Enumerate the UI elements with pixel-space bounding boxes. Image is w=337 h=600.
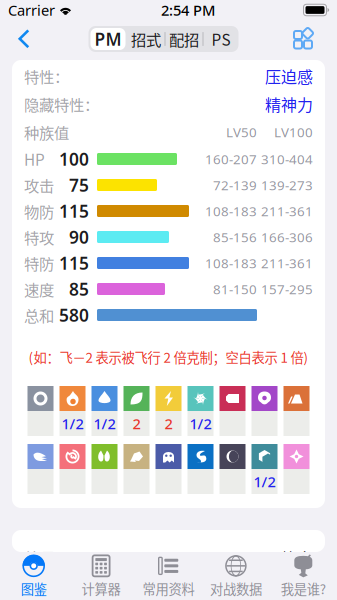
staticText: 2:54 PM (161, 0, 215, 20)
staticText: 2 (132, 414, 140, 433)
button[interactable]: 图鉴 (0, 551, 67, 600)
staticText: 计算器 (82, 579, 121, 598)
button[interactable]: Back (4, 20, 44, 58)
staticText: 100 (59, 147, 89, 170)
staticText: 1/2 (93, 414, 115, 433)
staticText: Carrier (8, 0, 55, 20)
button[interactable] (27, 386, 53, 436)
button[interactable] (59, 444, 85, 494)
staticText: 108-183 (205, 202, 257, 220)
button[interactable]: PS (203, 26, 238, 52)
staticText: 1/2 (61, 414, 83, 433)
staticText: 招式 (131, 28, 161, 50)
staticText: 我是谁? (281, 579, 326, 598)
button[interactable] (219, 444, 245, 494)
button[interactable]: PM (88, 26, 127, 52)
button[interactable] (283, 386, 309, 436)
staticText: 2 (164, 414, 172, 433)
button[interactable]: 1/2 (187, 386, 213, 436)
staticText: 特攻 (24, 226, 54, 248)
button[interactable] (123, 444, 149, 494)
staticText: (如：飞－2 表示被飞行 2 倍克制；空白表示 1 倍) (28, 347, 308, 367)
button[interactable]: 常用资料 (135, 551, 202, 600)
button[interactable] (251, 386, 277, 436)
staticText: 157-295 (261, 280, 313, 298)
staticText: 物防 (24, 200, 54, 222)
staticText: 211-361 (261, 254, 313, 272)
staticText: 对战数据 (210, 579, 262, 598)
staticText: 1/2 (253, 472, 275, 491)
staticText: 166-306 (261, 228, 313, 246)
staticText: 特防 (24, 252, 54, 274)
staticText: 速度 (24, 278, 54, 300)
button[interactable] (155, 444, 181, 494)
staticText: 160-207 (205, 150, 257, 168)
staticText: 压迫感 (265, 64, 313, 88)
staticText: PM (94, 27, 121, 50)
staticText: 310-404 (261, 150, 313, 168)
button[interactable] (187, 444, 213, 494)
staticText: 图鉴 (21, 579, 47, 598)
staticText: 81-150 (213, 280, 257, 298)
button[interactable]: 1/2 (251, 444, 277, 494)
staticText: 隐藏特性： (24, 93, 99, 115)
staticText: 108-183 (205, 254, 257, 272)
staticText: 72-139 (213, 176, 257, 194)
staticText: 90 (69, 225, 89, 248)
button[interactable] (91, 444, 117, 494)
staticText: 种族值 (24, 121, 69, 143)
staticText: 75 (69, 173, 89, 196)
staticText: 139-273 (261, 176, 313, 194)
staticText: 攻击 (24, 174, 54, 196)
staticText: 常用资料 (142, 579, 194, 598)
button[interactable]: 对战数据 (202, 551, 270, 600)
button[interactable]: 招式 (127, 26, 164, 52)
staticText: 精神力 (265, 92, 313, 116)
button[interactable]: 配招 (165, 26, 202, 52)
staticText: 总和 (24, 304, 54, 326)
staticText: 115 (59, 199, 89, 222)
button[interactable]: 1/2 (59, 386, 85, 436)
staticText: 115 (59, 251, 89, 274)
button[interactable]: 2 (123, 386, 149, 436)
staticText: PS (211, 28, 230, 50)
button[interactable]: 2 (155, 386, 181, 436)
button[interactable] (219, 386, 245, 436)
staticText: 火焰鸟 (265, 546, 313, 570)
button[interactable]: Grid view (283, 20, 323, 58)
button[interactable]: 计算器 (67, 551, 135, 600)
staticText: 580 (59, 303, 89, 326)
staticText: 外号： (24, 546, 72, 570)
staticText: 85-156 (213, 228, 257, 246)
staticText: 配招 (169, 28, 199, 50)
staticText: 1/2 (189, 414, 211, 433)
staticText: LV50 (226, 123, 257, 141)
button[interactable] (283, 444, 309, 494)
staticText: HP (24, 148, 45, 170)
staticText: 特性： (24, 65, 69, 87)
button[interactable]: 1/2 (91, 386, 117, 436)
staticText: LV100 (274, 123, 313, 141)
staticText: 85 (69, 277, 89, 300)
button[interactable]: 我是谁? (270, 551, 337, 600)
staticText: 211-361 (261, 202, 313, 220)
button[interactable] (27, 444, 53, 494)
